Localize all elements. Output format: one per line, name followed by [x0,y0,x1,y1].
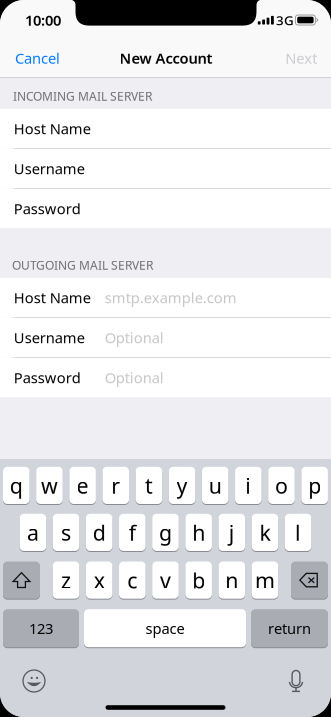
button[interactable]: m [252,561,278,599]
staticText: l [295,518,301,546]
staticText: Username [14,159,85,178]
staticText: Optional [105,328,164,347]
button[interactable]: r [102,467,129,504]
button[interactable]: Host Name [0,109,331,148]
button[interactable]: c [119,561,146,599]
button[interactable]: z [53,561,79,599]
staticText: s [61,518,71,546]
staticText: o [275,471,288,499]
staticText: g [159,518,172,546]
button[interactable]: Username [0,149,331,188]
staticText: r [111,471,120,499]
button[interactable] [3,561,40,599]
staticText: space [145,618,184,638]
button[interactable]: j [218,514,245,551]
button[interactable] [291,561,328,599]
button[interactable]: a [20,514,46,551]
button[interactable]: i [235,467,262,504]
staticText: Password [14,368,81,387]
staticText: New Account [119,48,212,68]
button[interactable]: l [285,514,311,551]
staticText: y [177,471,188,499]
button[interactable]: 123 [3,609,79,647]
button[interactable]: h [185,514,212,551]
staticText: smtp.example.com [105,288,237,307]
button[interactable]: return [251,609,328,647]
button[interactable]: q [3,467,30,504]
staticText: u [209,471,222,499]
staticText: n [225,566,238,594]
button[interactable]: Host Name [0,278,331,317]
button[interactable]: x [86,561,112,599]
staticText: j [229,518,235,546]
staticText: Host Name [14,119,91,138]
button[interactable]: v [152,561,179,599]
staticText: w [41,471,58,499]
staticText: p [308,471,321,499]
staticText: 3G [276,11,294,29]
staticText: 10:00 [25,10,61,30]
button[interactable]: w [36,467,63,504]
button[interactable]: Emoji keyboard [16,663,52,699]
button[interactable]: t [136,467,162,504]
button[interactable]: o [268,467,295,504]
staticText: Next [285,48,317,68]
staticText: t [145,471,153,499]
staticText: h [192,518,205,546]
button[interactable]: y [169,467,195,504]
button[interactable]: g [152,514,179,551]
button[interactable]: n [218,561,245,599]
button[interactable]: Password [0,189,331,228]
staticText: INCOMING MAIL SERVER [13,88,152,104]
staticText: OUTGOING MAIL SERVER [12,257,153,273]
button[interactable]: Dictation [278,663,314,699]
staticText: f [129,518,136,546]
button[interactable]: Next [267,40,331,76]
button[interactable]: p [301,467,328,504]
button[interactable]: e [69,467,96,504]
staticText: k [259,518,270,546]
staticText: b [192,566,205,594]
button[interactable]: u [202,467,228,504]
staticText: i [245,471,251,499]
button[interactable]: space [84,609,246,647]
button[interactable]: s [53,514,79,551]
button[interactable]: Username [0,318,331,357]
staticText: return [268,618,311,638]
staticText: Host Name [14,288,91,307]
staticText: v [160,566,171,594]
staticText: Optional [105,368,164,387]
staticText: a [27,518,39,546]
button[interactable]: k [252,514,278,551]
staticText: c [127,566,137,594]
button[interactable]: b [185,561,212,599]
button[interactable]: Cancel [0,40,75,76]
staticText: 123 [29,618,53,638]
staticText: d [93,518,106,546]
staticText: m [255,566,275,594]
button[interactable]: f [119,514,146,551]
staticText: e [77,471,89,499]
button[interactable]: d [86,514,112,551]
button[interactable]: Password [0,358,331,397]
staticText: Password [14,199,81,218]
staticText: Cancel [15,48,60,68]
staticText: q [10,471,23,499]
staticText: Username [14,328,85,347]
staticText: x [94,566,105,594]
staticText: z [61,566,71,594]
